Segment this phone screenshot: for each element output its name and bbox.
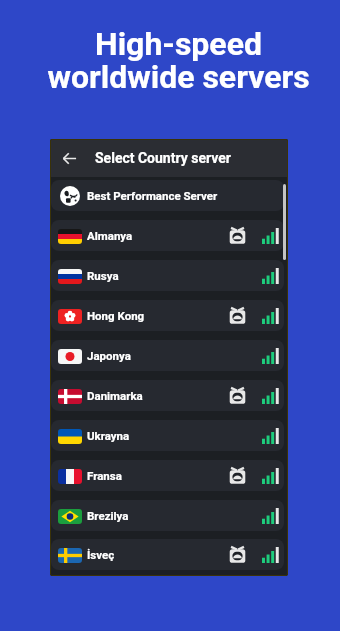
- button[interactable]: Hong Kong: [51, 300, 284, 331]
- button[interactable]: İsveç: [51, 539, 284, 570]
- staticText: Almanya: [87, 229, 133, 242]
- staticText: High-speed: [95, 25, 262, 63]
- button[interactable]: Japonya: [51, 340, 284, 371]
- button[interactable]: Fransa: [51, 460, 284, 491]
- button[interactable]: Rusya: [51, 260, 284, 291]
- staticText: İsveç: [87, 548, 115, 561]
- staticText: Rusya: [87, 269, 119, 282]
- button[interactable]: Best Performance Server: [51, 180, 284, 211]
- staticText: Japonya: [87, 349, 131, 362]
- button[interactable]: Streaming supported: [228, 306, 247, 325]
- button[interactable]: Streaming supported: [228, 545, 247, 564]
- button[interactable]: Ukrayna: [51, 420, 284, 451]
- button[interactable]: Streaming supported: [228, 386, 247, 405]
- staticText: Danimarka: [87, 389, 143, 402]
- staticText: Fransa: [87, 469, 122, 482]
- button[interactable]: Danimarka: [51, 380, 284, 411]
- staticText: Ukrayna: [87, 429, 130, 442]
- button[interactable]: Almanya: [51, 220, 284, 251]
- button[interactable]: Back: [55, 144, 83, 172]
- button[interactable]: Brezilya: [51, 500, 284, 531]
- staticText: Best Performance Server: [87, 189, 218, 202]
- button[interactable]: Streaming supported: [228, 466, 247, 485]
- staticText: Brezilya: [87, 509, 129, 522]
- staticText: Hong Kong: [87, 309, 145, 322]
- staticText: Select Country server: [95, 150, 231, 166]
- staticText: worldwide servers: [47, 58, 310, 96]
- button[interactable]: Streaming supported: [228, 226, 247, 245]
